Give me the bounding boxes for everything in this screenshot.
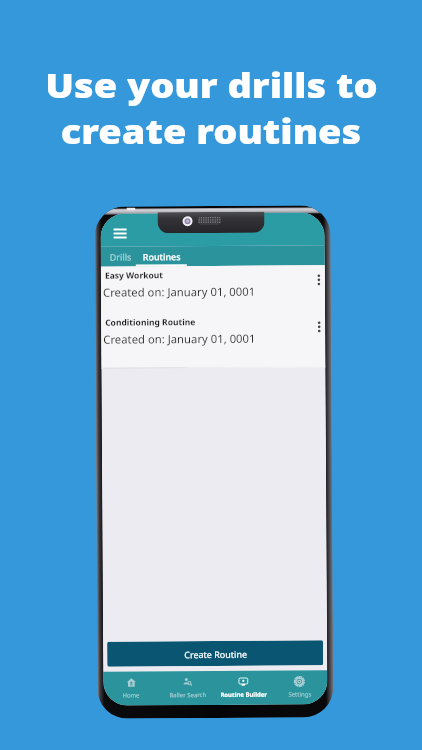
button[interactable]: Menu	[107, 222, 132, 245]
button[interactable]: Baller Search	[159, 671, 215, 705]
staticText: Home	[122, 691, 140, 700]
button[interactable]: Drills	[105, 246, 136, 267]
staticText: Baller Search	[169, 691, 206, 699]
staticText: Routine Builder	[220, 691, 267, 699]
button[interactable]: Settings	[271, 670, 327, 705]
staticText: Routines	[143, 250, 181, 262]
button[interactable]: More options	[308, 315, 324, 337]
button[interactable]: More options	[308, 268, 324, 290]
button[interactable]: Routines	[136, 246, 187, 266]
button[interactable]: Routine Builder	[215, 671, 271, 705]
button[interactable]: Conditioning Routine	[101, 315, 325, 347]
staticText: Created on: January 01, 0001	[103, 284, 256, 300]
staticText: Create Routine	[184, 648, 247, 660]
staticText: Settings	[288, 690, 311, 698]
staticText: Conditioning Routine	[105, 316, 196, 329]
staticText: create routines	[61, 108, 361, 154]
staticText: Drills	[110, 250, 132, 263]
button[interactable]: Easy Workout	[101, 268, 325, 300]
staticText: Created on: January 01, 0001	[103, 331, 256, 347]
button[interactable]: Create Routine	[107, 640, 323, 667]
button[interactable]: Home	[103, 671, 159, 706]
staticText: Use your drills to	[45, 62, 378, 108]
staticText: Easy Workout	[105, 269, 164, 282]
